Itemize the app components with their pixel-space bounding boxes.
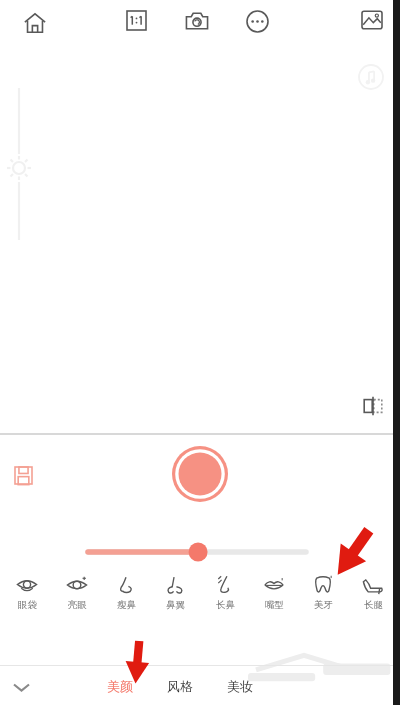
- staticText: 长鼻: [216, 599, 235, 611]
- staticText: 嘴型: [265, 599, 284, 611]
- button[interactable]: Shutter: [172, 446, 228, 502]
- button[interactable]: Music: [356, 62, 386, 92]
- button[interactable]: 风格: [167, 678, 193, 694]
- staticText: 瘦鼻: [117, 599, 136, 611]
- button[interactable]: [10, 88, 28, 240]
- staticText: 风格: [167, 678, 193, 694]
- button[interactable]: Gallery: [356, 4, 388, 36]
- staticText: 美妆: [227, 678, 253, 694]
- button[interactable]: 美妆: [227, 678, 253, 694]
- staticText: 美牙: [314, 599, 333, 611]
- button[interactable]: Home: [18, 6, 52, 40]
- staticText: 长腿: [364, 599, 383, 611]
- button[interactable]: 美牙: [301, 572, 345, 620]
- button[interactable]: Switch camera: [180, 4, 214, 38]
- button[interactable]: Compare: [358, 391, 388, 421]
- button[interactable]: Aspect ratio 1:1: [120, 4, 152, 36]
- button[interactable]: 瘦鼻: [104, 572, 148, 620]
- staticText: 眼袋: [18, 599, 37, 611]
- button[interactable]: 眼袋: [5, 572, 49, 620]
- staticText: 亮眼: [68, 599, 87, 611]
- button[interactable]: [0, 540, 400, 564]
- button[interactable]: 亮眼: [55, 572, 99, 620]
- button[interactable]: 美颜: [107, 678, 133, 694]
- button[interactable]: Collapse: [6, 672, 36, 702]
- staticText: 鼻翼: [166, 599, 185, 611]
- button[interactable]: 鼻翼: [153, 572, 197, 620]
- button[interactable]: Save: [6, 458, 40, 492]
- button[interactable]: More options: [240, 4, 274, 38]
- button[interactable]: 嘴型: [252, 572, 296, 620]
- button[interactable]: 长鼻: [203, 572, 247, 620]
- button[interactable]: 长腿: [351, 572, 395, 620]
- staticText: 美颜: [107, 678, 133, 694]
